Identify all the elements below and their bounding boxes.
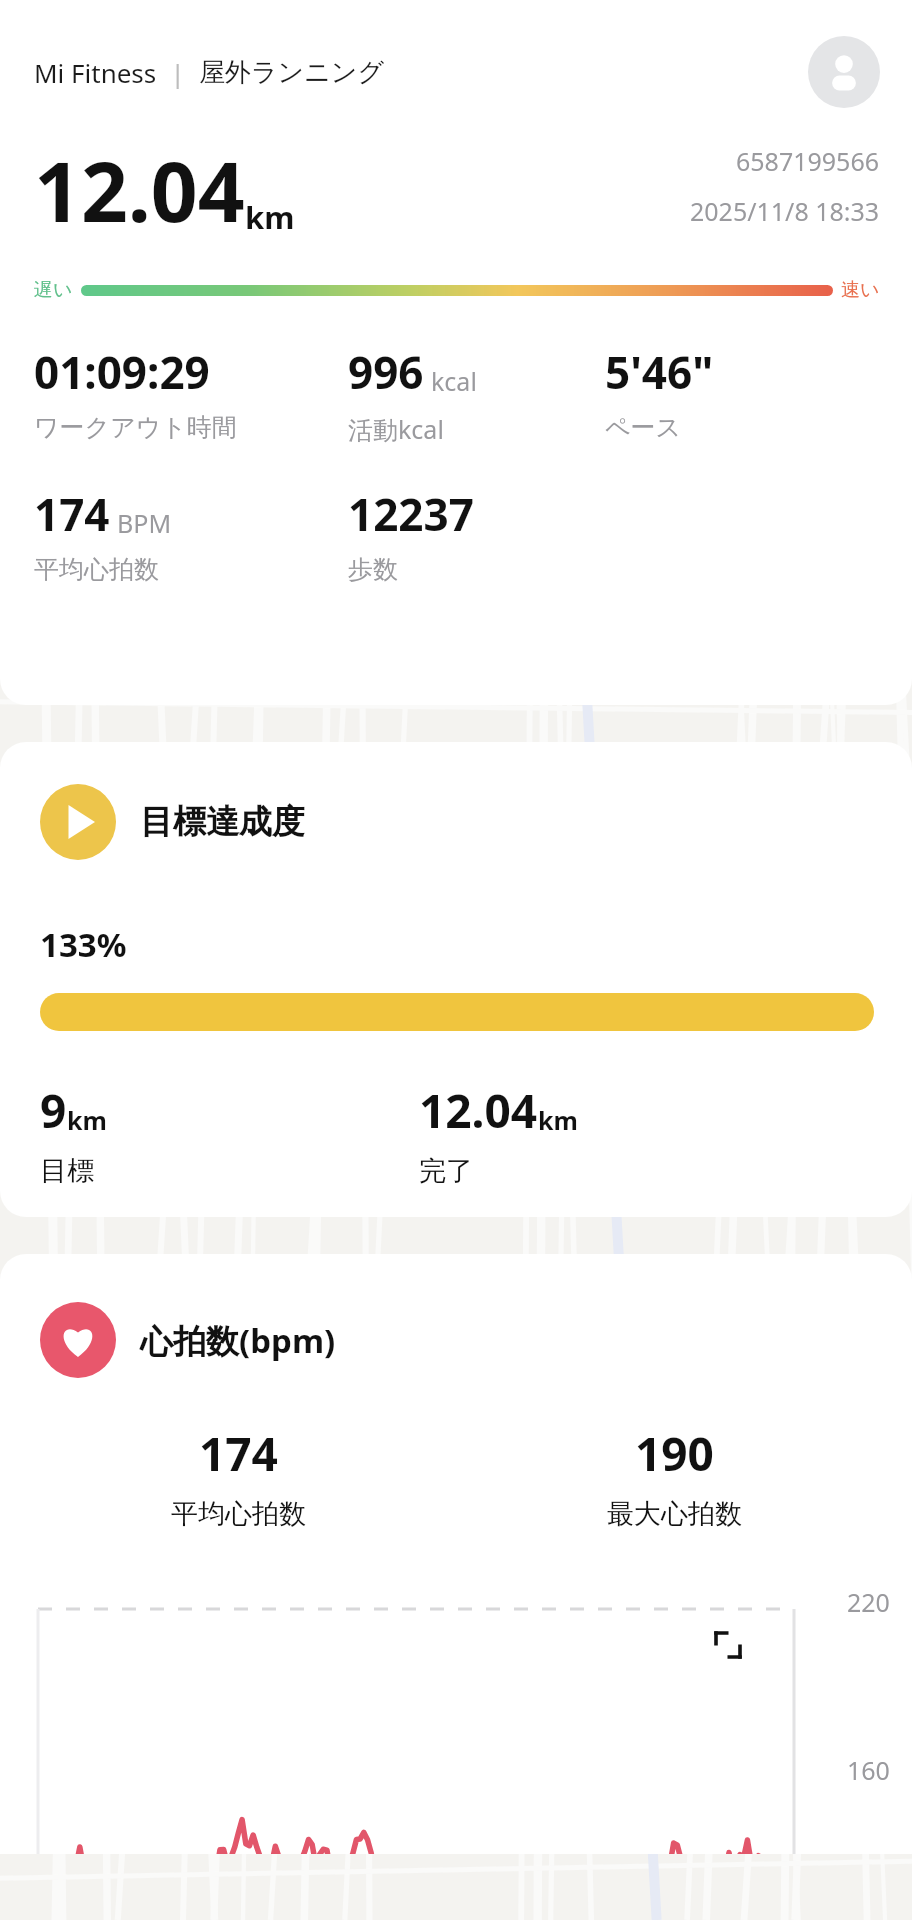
button[interactable]: Profile	[808, 36, 880, 108]
staticText: 5'46"	[605, 342, 714, 402]
staticText: ワークアウト時間	[34, 412, 237, 443]
staticText: km	[245, 196, 295, 238]
staticText: km	[67, 1103, 107, 1137]
staticText: kcal	[431, 364, 477, 398]
staticText: 174	[34, 484, 110, 544]
button[interactable]: 996	[348, 342, 605, 446]
staticText: 2025/11/8 18:33	[690, 194, 880, 228]
staticText: 12.04	[419, 1079, 538, 1142]
button[interactable]: 01:09:29	[34, 342, 348, 443]
staticText: 目標達成度	[140, 801, 305, 843]
staticText: 目標	[40, 1154, 94, 1188]
staticText: 遅い	[34, 278, 73, 302]
staticText: 12.04	[34, 134, 245, 246]
staticText: 9	[40, 1079, 67, 1142]
button[interactable]: Mi Fitness	[34, 55, 808, 90]
staticText: 屋外ランニング	[199, 56, 385, 89]
staticText: 174	[199, 1422, 278, 1485]
staticText: 活動kcal	[348, 412, 444, 446]
staticText: 190	[635, 1422, 714, 1485]
staticText: 6587199566	[736, 144, 880, 178]
button[interactable]: Expand chart	[696, 1613, 760, 1677]
staticText: 160	[847, 1753, 890, 1787]
staticText: Mi Fitness	[34, 55, 157, 90]
staticText: 最大心拍数	[607, 1497, 742, 1531]
button[interactable]: 174	[20, 1422, 456, 1531]
staticText: 133%	[40, 922, 127, 967]
staticText: 完了	[419, 1154, 473, 1188]
staticText: km	[538, 1103, 578, 1137]
button[interactable]: 目標達成度	[40, 784, 305, 860]
button[interactable]: 5'46"	[605, 342, 888, 443]
staticText: 12237	[348, 484, 474, 544]
button[interactable]: 174	[34, 484, 348, 585]
staticText: 平均心拍数	[171, 1497, 306, 1531]
staticText: ペース	[605, 412, 682, 443]
staticText: BPM	[117, 506, 172, 540]
button[interactable]: 12237	[348, 484, 605, 585]
staticText: 220	[847, 1585, 890, 1619]
button[interactable]: 12.04	[419, 1079, 874, 1188]
button[interactable]: 190	[456, 1422, 892, 1531]
staticText: 平均心拍数	[34, 554, 159, 585]
staticText: 心拍数(bpm)	[140, 1318, 336, 1363]
staticText: 01:09:29	[34, 342, 210, 402]
staticText: 996	[348, 342, 424, 402]
staticText: 歩数	[348, 554, 398, 585]
button[interactable]: 9	[40, 1079, 419, 1188]
button[interactable]: 心拍数(bpm)	[40, 1302, 336, 1378]
staticText: 速い	[841, 278, 880, 302]
staticText: |	[157, 55, 199, 90]
